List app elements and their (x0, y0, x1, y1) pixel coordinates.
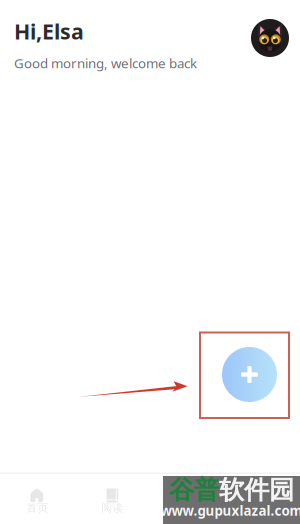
staticText: Hi,Elsa (14, 17, 84, 45)
button[interactable]: 笔记 (150, 474, 225, 524)
staticText: 阅读 (101, 501, 123, 514)
staticText: 谷普 (169, 475, 219, 506)
staticText: 笔记 (176, 501, 198, 514)
staticText: 我的 (251, 501, 273, 514)
staticText: www.gupuxlazal.com (160, 502, 300, 519)
button[interactable]: Profile (251, 19, 289, 57)
button[interactable]: 我的 (225, 474, 300, 524)
button[interactable]: 阅读 (75, 474, 150, 524)
button[interactable]: 首页 (0, 474, 75, 524)
staticText: 首页 (26, 501, 48, 514)
staticText: Good morning, welcome back (14, 54, 197, 72)
staticText: 软件园 (219, 475, 294, 506)
button[interactable]: Add (222, 347, 277, 402)
